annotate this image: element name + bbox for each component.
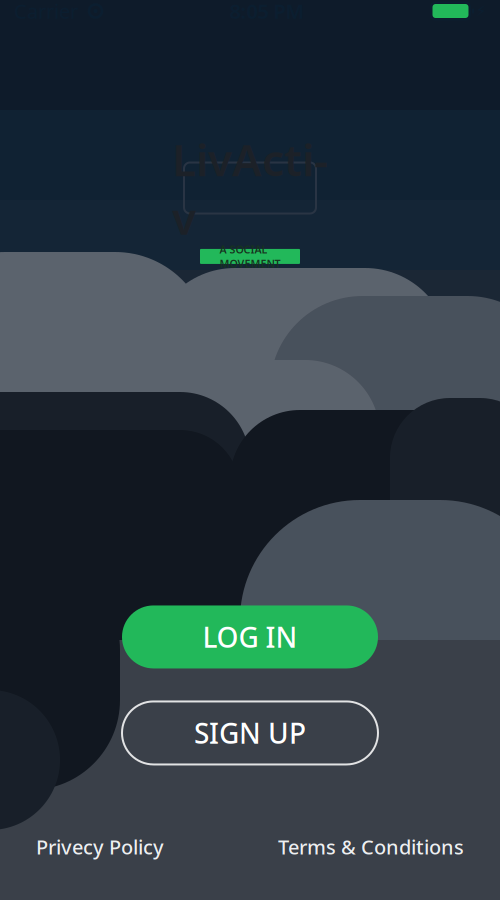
button[interactable]: SIGN UP (122, 701, 378, 764)
button[interactable]: Privecy Policy (36, 827, 164, 866)
staticText: SIGN UP (194, 714, 306, 751)
staticText: A SOCIAL MOVEMENT (219, 242, 280, 271)
staticText: Terms & Conditions (278, 833, 464, 860)
staticText: Privecy Policy (36, 833, 164, 860)
button[interactable]: LOG IN (122, 605, 378, 668)
staticText: LivActiv (172, 130, 328, 247)
button[interactable]: Terms & Conditions (278, 827, 464, 866)
staticText: LOG IN (202, 618, 297, 655)
